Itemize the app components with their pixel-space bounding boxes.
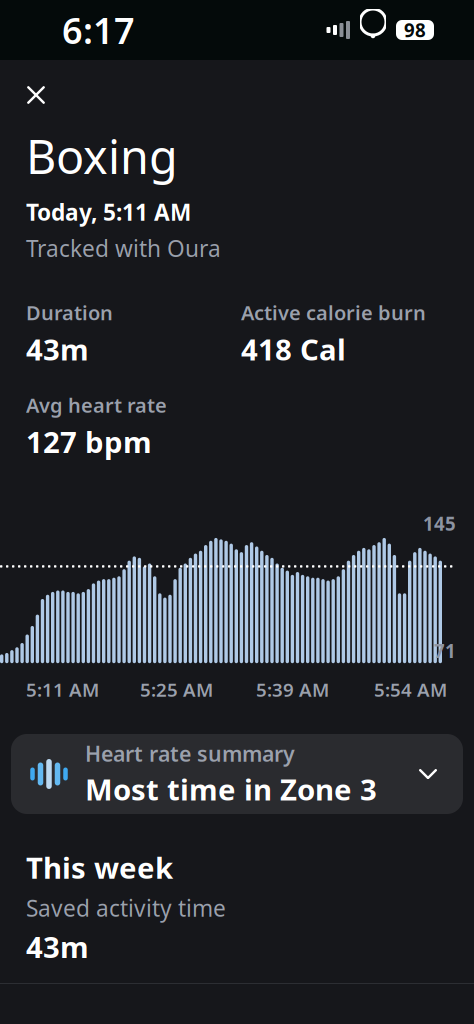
staticText: Saved activity time	[26, 893, 226, 923]
staticText: 5:54 AM	[374, 677, 447, 702]
staticText: Avg heart rate	[26, 392, 167, 418]
staticText: Most time in Zone 3	[85, 770, 377, 809]
staticText: 127 bpm	[26, 422, 152, 461]
staticText: Tracked with Oura	[26, 233, 221, 263]
staticText: 6:17	[62, 6, 135, 54]
staticText: 5:11 AM	[26, 677, 99, 702]
staticText: 5:39 AM	[256, 677, 329, 702]
button[interactable]: Close	[8, 67, 64, 123]
staticText: 145	[423, 511, 456, 536]
staticText: 43m	[26, 927, 89, 966]
staticText: Active calorie burn	[241, 299, 426, 326]
button[interactable]: Heart rate summary	[11, 734, 463, 814]
staticText: Duration	[26, 299, 113, 326]
staticText: Heart rate summary	[85, 739, 295, 768]
staticText: This week	[26, 848, 173, 887]
staticText: Today, 5:11 AM	[26, 197, 191, 227]
staticText: 71	[434, 638, 456, 663]
staticText: 418 Cal	[241, 330, 346, 369]
staticText: 43m	[26, 330, 89, 369]
staticText: 98	[404, 18, 426, 42]
staticText: Boxing	[26, 125, 178, 187]
staticText: 5:25 AM	[140, 677, 213, 702]
